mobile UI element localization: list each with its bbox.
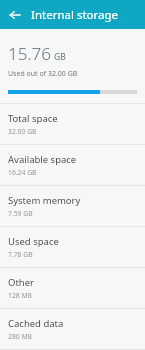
staticText: 7.59 GB xyxy=(8,209,33,218)
button[interactable]: Available space xyxy=(0,145,145,185)
button[interactable]: Cached data xyxy=(0,309,145,349)
staticText: 15.76 xyxy=(8,42,51,65)
staticText: Used space xyxy=(8,235,59,248)
button[interactable]: Used space xyxy=(0,227,145,267)
staticText: Available space xyxy=(8,153,77,166)
staticText: GB xyxy=(54,51,66,63)
staticText: Total space xyxy=(8,112,58,125)
button[interactable]: Total space xyxy=(0,104,145,144)
staticText: Used out of 32.00 GB xyxy=(8,69,78,79)
staticText: 16.24 GB xyxy=(8,168,37,177)
staticText: 7.78 GB xyxy=(8,250,33,259)
staticText: System memory xyxy=(8,194,81,207)
staticText: 32.00 GB xyxy=(8,127,37,136)
button[interactable]: Back xyxy=(6,6,24,24)
staticText: 280 MB xyxy=(8,332,33,341)
staticText: Internal storage xyxy=(31,7,119,23)
staticText: Other xyxy=(8,276,35,289)
staticText: Cached data xyxy=(8,317,64,330)
staticText: 128 MB xyxy=(8,291,33,300)
button[interactable]: System memory xyxy=(0,186,145,226)
button[interactable]: Other xyxy=(0,268,145,308)
